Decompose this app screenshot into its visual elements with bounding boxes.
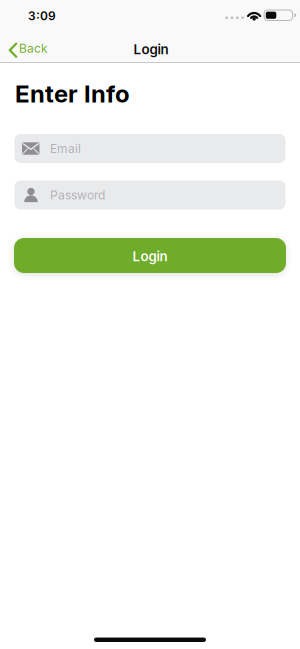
staticText: Enter Info — [15, 80, 130, 108]
staticText: Login — [133, 41, 168, 57]
button[interactable]: Back — [0, 28, 54, 62]
staticText: Password — [50, 188, 105, 202]
staticText: Back — [19, 41, 48, 56]
staticText: Login — [132, 248, 167, 264]
button[interactable]: Password — [0, 180, 300, 209]
button[interactable]: Login — [0, 238, 300, 273]
staticText: 3:09 — [28, 9, 56, 23]
staticText: Email — [50, 142, 81, 156]
button[interactable]: Email — [0, 134, 300, 163]
